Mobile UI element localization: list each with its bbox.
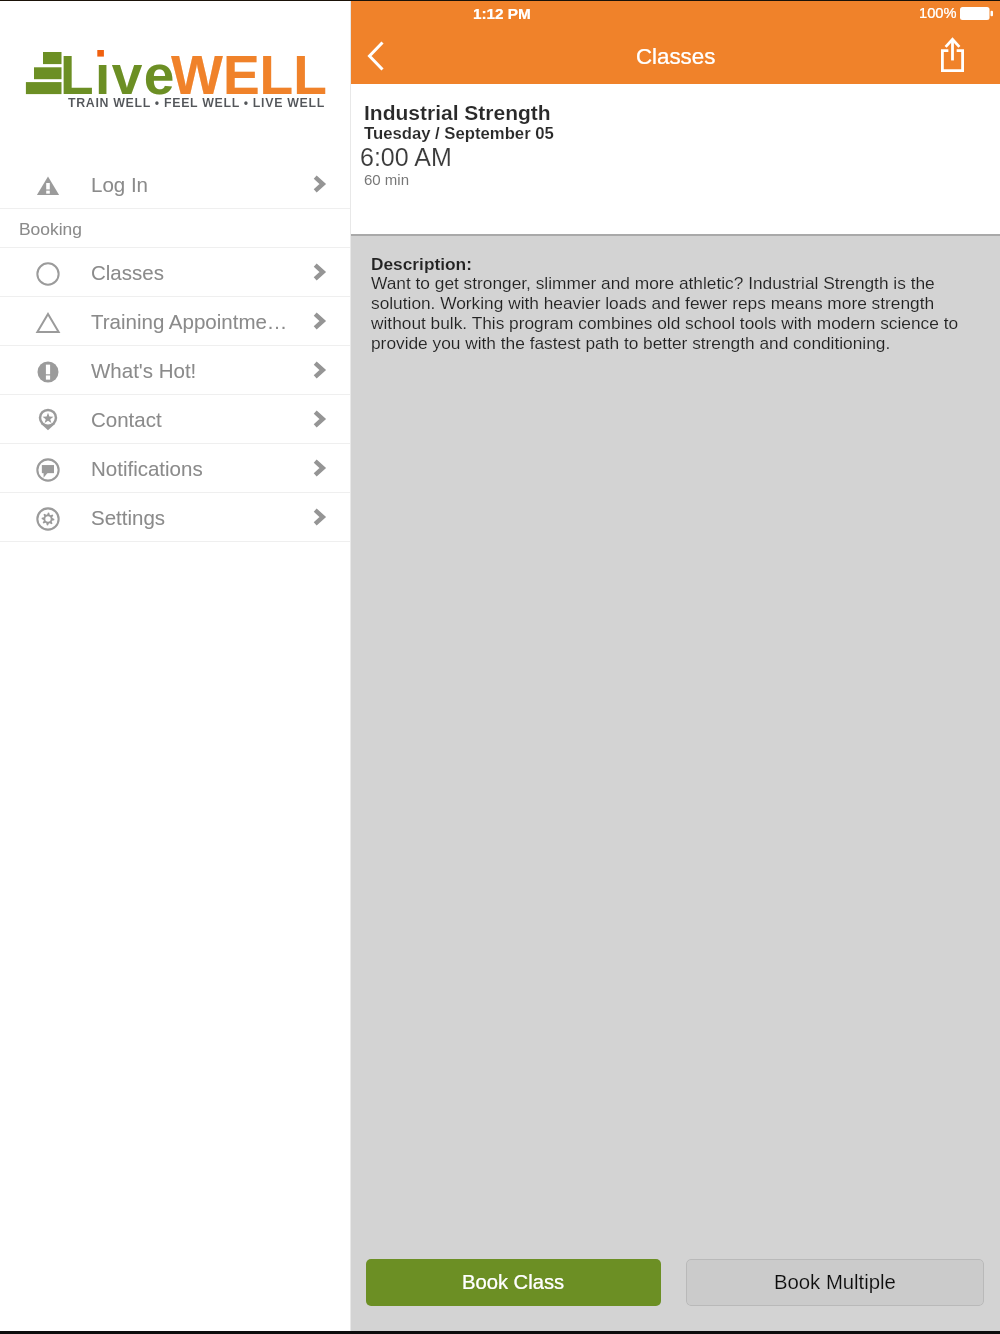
- button[interactable]: What's Hot!: [0, 346, 351, 394]
- staticText: WELL: [171, 44, 327, 104]
- staticText: TRAIN WELL • FEEL WELL • LIVE WELL: [68, 96, 325, 110]
- button[interactable]: Contact: [0, 395, 351, 443]
- button[interactable]: Back: [351, 28, 400, 84]
- staticText: Training Appointme…: [91, 310, 288, 333]
- staticText: Classes: [636, 44, 716, 69]
- staticText: 6:00 AM: [360, 143, 452, 171]
- staticText: 100%: [919, 5, 957, 21]
- staticText: Live: [60, 44, 176, 104]
- staticText: Industrial Strength: [364, 101, 551, 124]
- button[interactable]: Classes: [0, 248, 351, 296]
- staticText: Description:: [371, 254, 472, 273]
- staticText: 1:12 PM: [473, 5, 531, 22]
- staticText: What's Hot!: [91, 359, 197, 382]
- staticText: Contact: [91, 408, 162, 431]
- staticText: Book Multiple: [774, 1271, 896, 1294]
- button[interactable]: Training Appointme…: [0, 297, 351, 345]
- staticText: Log In: [91, 173, 148, 196]
- button[interactable]: Book Class: [366, 1259, 661, 1306]
- button[interactable]: Log In: [0, 160, 351, 208]
- button[interactable]: Book Multiple: [686, 1259, 984, 1306]
- button[interactable]: Settings: [0, 493, 351, 541]
- button[interactable]: Notifications: [0, 444, 351, 492]
- button[interactable]: Share: [924, 28, 980, 84]
- staticText: Classes: [91, 261, 164, 284]
- staticText: 60 min: [364, 171, 410, 188]
- staticText: Booking: [19, 219, 82, 238]
- staticText: Settings: [91, 506, 166, 529]
- staticText: Notifications: [91, 457, 203, 480]
- staticText: Want to get stronger, slimmer and more a…: [371, 273, 983, 353]
- staticText: Book Class: [462, 1271, 565, 1294]
- staticText: Tuesday / September 05: [364, 124, 554, 143]
